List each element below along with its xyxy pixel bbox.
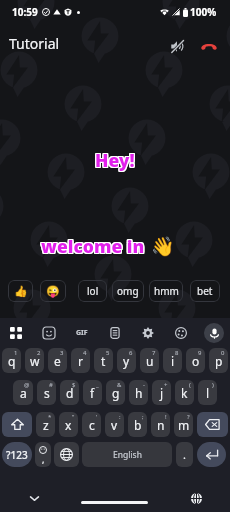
staticText: Hey! <box>94 148 134 172</box>
staticText: " <box>72 413 75 421</box>
button[interactable]: p <box>209 348 228 373</box>
staticText: 4 <box>83 349 87 357</box>
staticText: 2 <box>37 349 41 357</box>
staticText: ?123 <box>6 448 28 462</box>
staticText: 8 <box>175 349 179 357</box>
button[interactable]: i <box>163 348 182 373</box>
button[interactable]: c <box>82 412 101 437</box>
button[interactable]: Space <box>82 442 172 467</box>
staticText: English <box>113 449 142 461</box>
button[interactable]: Change language <box>54 442 79 467</box>
staticText: ? <box>187 413 190 421</box>
button[interactable]: Stickers <box>32 318 65 348</box>
button[interactable]: Themes <box>164 318 197 348</box>
button[interactable]: Emoji and comma <box>35 442 51 467</box>
staticText: f <box>90 385 95 401</box>
button[interactable]: lol <box>78 280 107 302</box>
staticText: lol <box>87 284 99 298</box>
button[interactable]: Settings <box>131 318 164 348</box>
staticText: welcome in <box>41 233 145 257</box>
staticText: GIF <box>76 328 88 338</box>
button[interactable]: End call <box>196 33 222 59</box>
staticText: 0 <box>221 349 225 357</box>
button[interactable]: omg <box>112 280 144 302</box>
staticText: bet <box>197 284 213 298</box>
button[interactable]: Backspace <box>197 412 228 437</box>
button[interactable]: x <box>59 412 78 437</box>
button[interactable]: GIF <box>65 318 98 348</box>
staticText: Tutorial <box>9 34 60 53</box>
button[interactable]: 😜 <box>40 280 66 302</box>
staticText: 7 <box>152 349 156 357</box>
staticText: e <box>54 353 61 369</box>
staticText: Hey! <box>96 148 136 172</box>
staticText: l <box>206 385 210 401</box>
button[interactable]: t <box>94 348 113 373</box>
button[interactable]: l <box>198 380 217 405</box>
staticText: welcome in <box>40 234 144 258</box>
button[interactable]: s <box>37 380 56 405</box>
staticText: ( <box>189 381 191 389</box>
staticText: 100% <box>190 5 217 19</box>
staticText: q <box>8 353 16 369</box>
button[interactable]: q <box>2 348 21 373</box>
staticText: welcome in <box>40 235 144 259</box>
staticText: welcome in <box>41 235 145 259</box>
staticText: 😜 <box>46 285 60 298</box>
button[interactable]: Hide keyboard <box>24 488 44 508</box>
staticText: & <box>117 381 122 389</box>
staticText: h <box>135 385 143 401</box>
staticText: . <box>183 447 186 462</box>
button[interactable]: Enter <box>197 442 226 467</box>
button[interactable]: Period <box>176 442 193 467</box>
button[interactable]: o <box>186 348 205 373</box>
staticText: z <box>43 417 49 433</box>
button[interactable]: y <box>117 348 136 373</box>
button[interactable]: 👍 <box>8 280 33 302</box>
staticText: w <box>30 353 40 369</box>
staticText: 👍 <box>14 285 28 298</box>
staticText: y <box>123 353 130 369</box>
button[interactable]: d <box>60 380 79 405</box>
staticText: 👋 <box>151 235 175 257</box>
button[interactable]: u <box>140 348 159 373</box>
staticText: * <box>48 413 52 421</box>
button[interactable]: Shift <box>2 412 32 437</box>
staticText: x <box>65 417 72 433</box>
button[interactable]: j <box>152 380 171 405</box>
button[interactable]: bet <box>190 280 220 302</box>
staticText: Hey! <box>94 149 134 173</box>
staticText: 6 <box>129 349 133 357</box>
staticText: s <box>44 385 50 401</box>
button[interactable]: Switch language <box>186 488 207 509</box>
button[interactable]: m <box>174 412 193 437</box>
staticText: n <box>157 417 165 433</box>
button[interactable]: z <box>36 412 55 437</box>
button[interactable]: hmm <box>149 280 183 302</box>
button[interactable]: n <box>151 412 170 437</box>
staticText: ) <box>212 381 214 389</box>
button[interactable]: k <box>175 380 194 405</box>
button[interactable]: g <box>106 380 125 405</box>
staticText: - <box>143 381 145 389</box>
button[interactable]: Mute <box>164 33 190 59</box>
button[interactable]: Clipboard <box>98 318 131 348</box>
staticText: 5 <box>106 349 110 357</box>
button[interactable]: w <box>25 348 44 373</box>
staticText: 1 <box>14 349 18 357</box>
button[interactable]: v <box>105 412 124 437</box>
staticText: a <box>20 385 27 401</box>
button[interactable]: r <box>71 348 90 373</box>
button[interactable]: Symbols <box>2 442 32 467</box>
staticText: _ <box>96 381 99 389</box>
staticText: Hey! <box>95 147 135 171</box>
button[interactable]: Apps <box>0 318 32 348</box>
button[interactable]: e <box>48 348 67 373</box>
staticText: : <box>119 413 121 421</box>
button[interactable]: Voice input <box>197 318 230 348</box>
button[interactable]: h <box>129 380 148 405</box>
button[interactable]: b <box>128 412 147 437</box>
staticText: g <box>112 385 120 401</box>
button[interactable]: f <box>83 380 102 405</box>
button[interactable]: a <box>13 380 33 405</box>
